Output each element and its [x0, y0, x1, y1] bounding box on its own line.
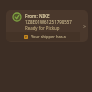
staticText: From: NIKE [25, 13, 50, 19]
staticText: Ready for Pickup [25, 25, 60, 31]
button[interactable]: Delivered [6, 10, 88, 42]
other: Delivered [13, 13, 21, 21]
other: Message [24, 35, 28, 39]
staticText: 1Z8E01W61251790557 [25, 19, 72, 25]
button[interactable]: Open notification [80, 10, 88, 42]
staticText: Your shipper has a message for you. [31, 34, 77, 39]
